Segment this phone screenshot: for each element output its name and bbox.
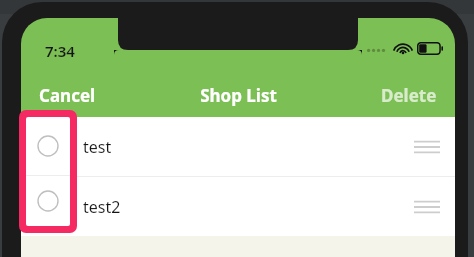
staticText: Delete [381,84,437,107]
other: Reorder test2 [399,177,455,236]
other: Reorder test [399,117,455,176]
staticText: test2 [83,196,121,218]
staticText: test [83,136,112,158]
button[interactable]: Cancel [21,73,106,117]
other: Select test2 [21,177,71,236]
other: Select test [21,117,71,176]
staticText: Shop List [200,84,277,107]
button[interactable]: Delete [371,73,455,117]
staticText: 7:34 [45,41,75,61]
button[interactable]: Select test2 [21,177,455,236]
button[interactable]: Select test [21,117,455,176]
staticText: Cancel [39,84,96,107]
